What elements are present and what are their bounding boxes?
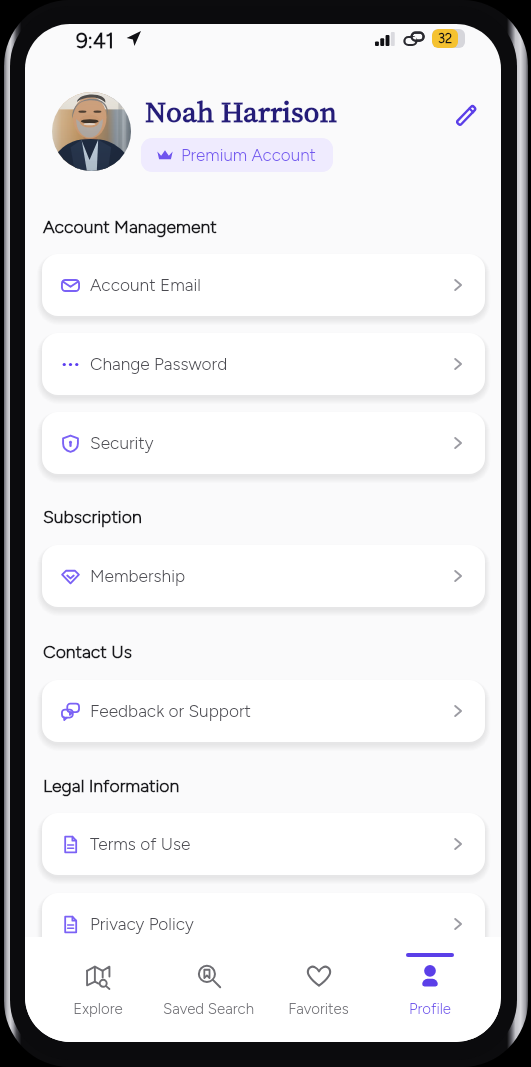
button[interactable]: Privacy Policy — [42, 893, 485, 955]
staticText: Legal Information — [43, 775, 180, 796]
staticText: Premium Account — [181, 145, 316, 165]
button[interactable]: Profile — [374, 937, 485, 1042]
staticText: Profile — [409, 1000, 451, 1018]
staticText: Favorites — [288, 1000, 349, 1018]
button[interactable]: Saved Search — [153, 937, 263, 1042]
button[interactable]: Account Email — [42, 254, 485, 316]
button[interactable]: Security — [42, 412, 485, 474]
staticText: Membership — [90, 566, 186, 587]
button[interactable]: Membership — [42, 545, 485, 607]
button[interactable]: Favorites — [263, 937, 374, 1042]
staticText: 32 — [438, 31, 453, 47]
button[interactable]: Premium Account — [141, 138, 333, 172]
button[interactable]: Terms of Use — [42, 813, 485, 875]
staticText: Noah Harrison — [145, 92, 337, 132]
button[interactable]: Edit profile — [448, 97, 484, 133]
staticText: Saved Search — [163, 1000, 254, 1018]
button[interactable]: Change Password — [42, 333, 485, 395]
staticText: Contact Us — [43, 641, 132, 662]
button[interactable]: Feedback or Support — [42, 680, 485, 742]
staticText: Account Management — [43, 216, 217, 237]
staticText: Feedback or Support — [90, 701, 251, 722]
button[interactable]: Explore — [43, 937, 153, 1042]
staticText: Subscription — [43, 506, 142, 527]
staticText: Explore — [73, 1000, 123, 1018]
staticText: Privacy Policy — [90, 914, 194, 935]
staticText: Change Password — [90, 354, 228, 375]
staticText: 9:41 — [76, 28, 115, 53]
staticText: Security — [90, 433, 154, 454]
staticText: Terms of Use — [90, 834, 191, 855]
staticText: Account Email — [90, 275, 201, 296]
